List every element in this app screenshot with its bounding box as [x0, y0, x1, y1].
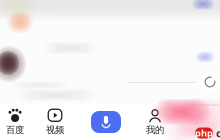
button[interactable]: 我的	[137, 107, 173, 137]
button[interactable]: Voice search	[91, 107, 121, 137]
button[interactable]: 视频	[37, 107, 73, 137]
staticText: 视频	[46, 124, 64, 136]
button[interactable]: 百度	[0, 107, 33, 137]
staticText: cn	[216, 126, 220, 140]
staticText: php	[195, 127, 213, 139]
staticText: 百度	[6, 124, 24, 136]
button[interactable]: Refresh	[200, 72, 220, 92]
staticText: 我的	[146, 124, 164, 136]
